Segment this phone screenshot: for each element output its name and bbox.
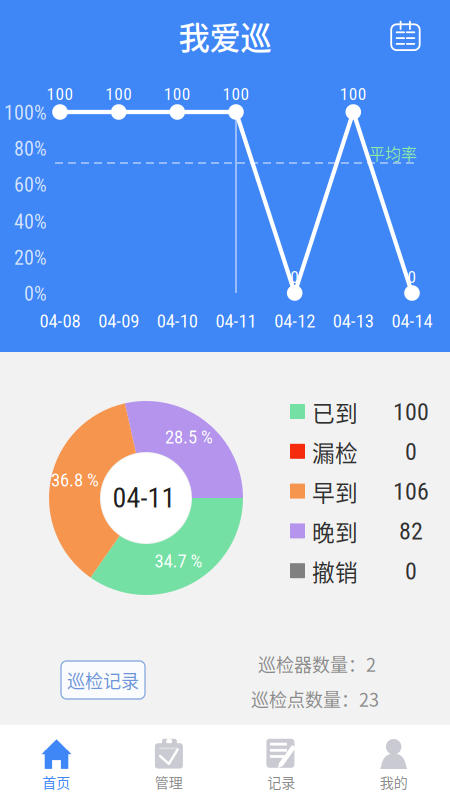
staticText: 0 bbox=[407, 267, 416, 287]
staticText: 04-11 bbox=[215, 310, 256, 332]
staticText: 巡检点数量：23 bbox=[251, 686, 379, 712]
staticText: 0 bbox=[290, 267, 299, 287]
staticText: 100 bbox=[46, 84, 73, 104]
staticText: 100 bbox=[222, 84, 249, 104]
staticText: 100% bbox=[4, 101, 47, 125]
staticText: 04-08 bbox=[39, 310, 80, 332]
staticText: 28.5 % bbox=[165, 426, 213, 448]
staticText: 已到 bbox=[312, 396, 358, 428]
staticText: 20% bbox=[14, 246, 47, 270]
staticText: 106 bbox=[393, 477, 429, 506]
button[interactable]: 记录 bbox=[225, 725, 337, 800]
staticText: 早到 bbox=[312, 475, 358, 508]
staticText: 82 bbox=[399, 517, 423, 545]
staticText: 0 bbox=[405, 438, 417, 466]
staticText: 04-13 bbox=[333, 310, 374, 332]
staticText: 100 bbox=[393, 398, 429, 426]
staticText: 04-09 bbox=[98, 310, 139, 332]
staticText: 04-14 bbox=[391, 310, 432, 332]
staticText: 100 bbox=[340, 84, 367, 104]
staticText: 34.7 % bbox=[154, 550, 202, 572]
staticText: 首页 bbox=[42, 772, 70, 792]
staticText: 巡检器数量：2 bbox=[258, 651, 376, 677]
staticText: 04-10 bbox=[157, 310, 198, 332]
button[interactable]: 记录列表 bbox=[384, 14, 428, 58]
button[interactable]: 首页 bbox=[0, 725, 112, 800]
staticText: 04-11 bbox=[112, 482, 175, 514]
staticText: 36.8 % bbox=[51, 469, 99, 491]
staticText: 我的 bbox=[380, 772, 408, 792]
button[interactable]: 巡检记录 bbox=[61, 661, 145, 699]
staticText: 管理 bbox=[155, 772, 183, 792]
staticText: 0% bbox=[24, 282, 47, 306]
staticText: 0 bbox=[405, 557, 417, 585]
staticText: 80% bbox=[14, 137, 47, 161]
staticText: 我爱巡 bbox=[178, 13, 271, 59]
staticText: 巡检记录 bbox=[67, 667, 139, 693]
staticText: 40% bbox=[14, 210, 47, 234]
staticText: 漏检 bbox=[312, 435, 358, 468]
staticText: 晚到 bbox=[312, 515, 358, 548]
staticText: 60% bbox=[14, 173, 47, 197]
staticText: 100 bbox=[164, 84, 191, 104]
button[interactable]: 管理 bbox=[112, 725, 225, 800]
staticText: 平均率 bbox=[369, 141, 417, 165]
staticText: 记录 bbox=[267, 772, 295, 792]
staticText: 04-12 bbox=[274, 310, 315, 332]
button[interactable]: 我的 bbox=[337, 725, 450, 800]
staticText: 100 bbox=[105, 84, 132, 104]
staticText: 撤销 bbox=[312, 555, 358, 588]
